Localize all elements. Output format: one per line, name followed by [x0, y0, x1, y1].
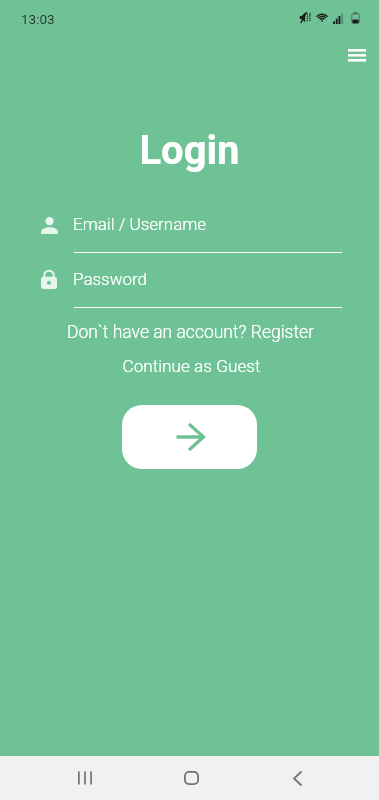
- staticText: Email / Username: [73, 214, 207, 234]
- button[interactable]: Home: [169, 756, 213, 800]
- staticText: Login: [0, 127, 379, 174]
- button[interactable]: Menu: [335, 33, 379, 77]
- button[interactable]: Don`t have an account? Register: [1, 322, 379, 343]
- button[interactable]: Back: [275, 756, 319, 800]
- button[interactable]: Sign in: [122, 405, 257, 469]
- staticText: Password: [73, 269, 148, 289]
- staticText: 13:03: [21, 11, 55, 27]
- button[interactable]: Recent apps: [63, 756, 107, 800]
- button[interactable]: Continue as Guest: [2, 356, 379, 376]
